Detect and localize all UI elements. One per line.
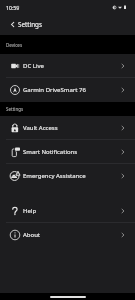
staticText: Garmin DriveSmart 76	[23, 86, 121, 94]
staticText: 10:59	[6, 4, 20, 11]
staticText: Smart Notifications	[23, 148, 121, 156]
button[interactable]: Help	[0, 199, 135, 223]
button[interactable]: Emergency Assistance	[0, 164, 135, 188]
staticText: About	[23, 231, 121, 239]
button[interactable]: Back	[3, 14, 21, 35]
staticText: Devices	[6, 42, 23, 48]
button[interactable]: About	[0, 223, 135, 247]
staticText: Emergency Assistance	[23, 172, 121, 180]
button[interactable]: Garmin DriveSmart 76	[0, 78, 135, 102]
staticText: DC Live	[23, 62, 121, 70]
staticText: Help	[23, 207, 121, 215]
button[interactable]: DC Live	[0, 54, 135, 78]
button[interactable]: Vault Access	[0, 116, 135, 140]
staticText: Vault Access	[23, 124, 121, 132]
button[interactable]: Smart Notifications	[0, 140, 135, 164]
staticText: Settings	[6, 106, 24, 112]
staticText: Settings	[18, 20, 42, 29]
